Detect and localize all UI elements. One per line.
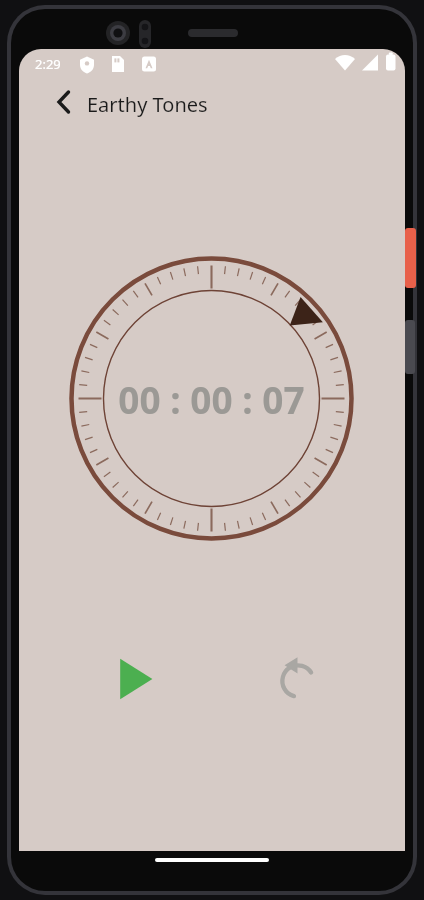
button[interactable]: Timer dial [66, 253, 357, 544]
staticText: Earthy Tones [87, 91, 208, 118]
button[interactable]: Reset [262, 643, 334, 715]
button[interactable]: Start [98, 643, 170, 715]
staticText: 2:29 [35, 55, 61, 73]
button[interactable]: Back [40, 78, 88, 126]
staticText: 00 : 00 : 07 [118, 374, 305, 424]
